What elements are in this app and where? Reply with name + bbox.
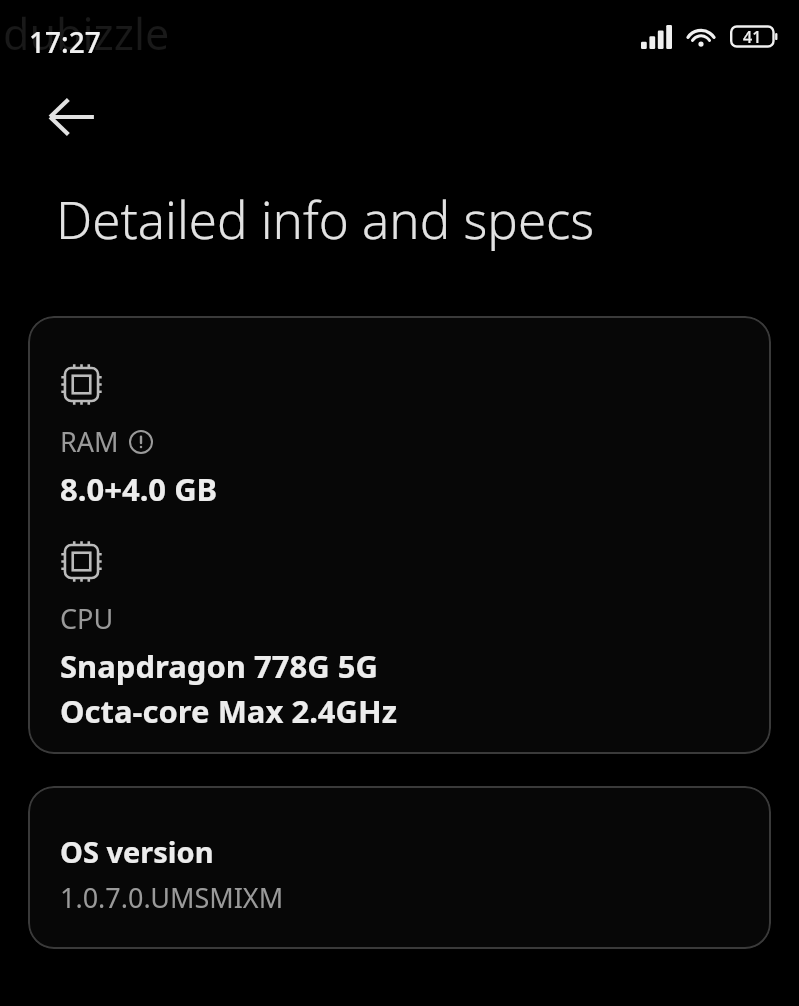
staticText: 8.0+4.0 GB [60, 468, 218, 510]
staticText: RAM [60, 423, 119, 460]
staticText: dubizzle [3, 4, 170, 63]
staticText: OS version [60, 832, 214, 871]
staticText: 17:27 [29, 23, 101, 61]
button[interactable]: OS version [28, 786, 771, 949]
button[interactable]: RAM info [128, 429, 154, 455]
staticText: Snapdragon 778G 5G [60, 645, 378, 687]
staticText: CPU [60, 600, 114, 637]
staticText: 1.0.7.0.UMSMIXM [60, 879, 284, 916]
staticText: Octa-core Max 2.4GHz [60, 690, 398, 732]
button[interactable]: RAM [28, 316, 771, 754]
staticText: 41 [743, 26, 762, 48]
staticText: Detailed info and specs [56, 184, 595, 253]
button[interactable]: Back [38, 88, 106, 146]
